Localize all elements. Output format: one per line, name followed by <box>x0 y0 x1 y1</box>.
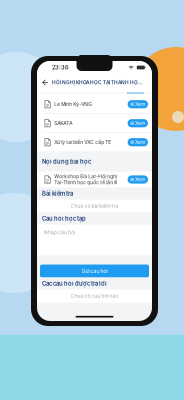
staticText: Xử lý tai biến VXC cấp TE <box>54 139 111 145</box>
staticText: Xem <box>135 139 145 145</box>
staticText: Câu hỏi học tập <box>42 215 86 222</box>
staticText: Nội dung bài học <box>42 158 91 165</box>
button[interactable]: Xem <box>128 175 148 184</box>
staticText: Chưa có câu hỏi nào <box>70 293 118 299</box>
button[interactable]: Xử lý tai biến VXC cấp TE <box>37 133 152 151</box>
staticText: Các câu hỏi được trả lời <box>42 280 107 287</box>
staticText: HỘI NGHỊ KHOA HỌC TẠI THÀNH HỌC... <box>52 80 144 85</box>
staticText: 23:36 <box>52 64 69 71</box>
button[interactable]: Gửi câu hỏi <box>40 264 149 277</box>
button[interactable]: Xem <box>128 119 148 127</box>
button[interactable]: Lê Minh Kỳ-VNG <box>37 95 152 113</box>
staticText: Workshop Đà Lạt-Hội nghị Tai-Thính học q… <box>54 173 117 185</box>
staticText: Nhập câu hỏi <box>44 229 75 235</box>
staticText: SAKATA <box>54 120 72 126</box>
button[interactable]: Workshop Đà Lạt-Hội nghị Tai-Thính học q… <box>37 171 152 187</box>
button[interactable]: Xem <box>128 100 148 108</box>
button[interactable]: Back <box>42 79 48 86</box>
staticText: Gửi câu hỏi <box>81 268 107 274</box>
button[interactable]: Xem <box>128 138 148 146</box>
staticText: Bài kiểm tra <box>42 190 73 197</box>
button[interactable]: SAKATA <box>37 114 152 132</box>
staticText: Xem <box>135 120 145 126</box>
staticText: Xem <box>135 101 145 107</box>
staticText: Xem <box>135 176 145 182</box>
staticText: Chưa có bài kiểm tra <box>70 203 118 209</box>
staticText: Lê Minh Kỳ-VNG <box>54 101 92 107</box>
